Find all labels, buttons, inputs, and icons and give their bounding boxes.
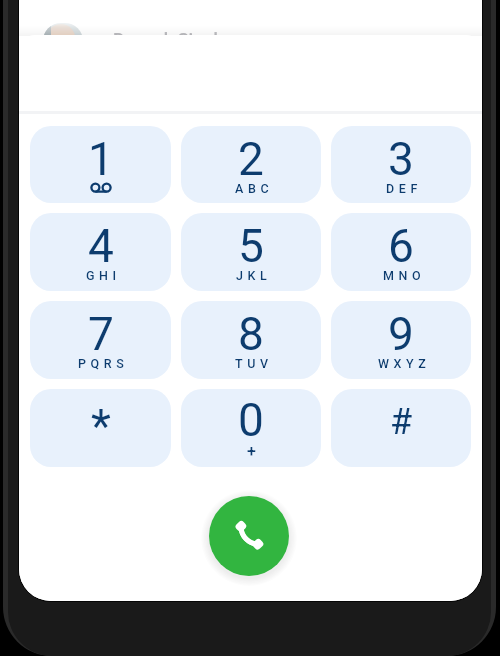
staticText: PQRS	[78, 356, 129, 371]
button[interactable]: 1	[30, 126, 171, 203]
button[interactable]: #	[331, 389, 471, 467]
staticText: 7	[88, 307, 114, 361]
button[interactable]: 9	[331, 301, 471, 379]
staticText: ABC	[235, 181, 274, 196]
button[interactable]: 2	[181, 126, 321, 203]
button[interactable]: 6	[331, 213, 471, 291]
button[interactable]: Call	[209, 496, 289, 576]
button[interactable]: 4	[30, 213, 171, 291]
staticText: GHI	[86, 268, 121, 283]
staticText: *	[91, 399, 111, 453]
staticText: Deepak Singh	[113, 29, 224, 50]
staticText: #	[390, 401, 413, 443]
staticText: JKL	[236, 268, 272, 283]
button[interactable]: 3	[331, 126, 471, 203]
staticText: TUV	[235, 356, 273, 371]
staticText: 3	[388, 132, 414, 186]
staticText: 6	[388, 219, 414, 273]
staticText: 9	[388, 307, 414, 361]
button[interactable]: 7	[30, 301, 171, 379]
button[interactable]: 0	[181, 389, 321, 467]
staticText: MNO	[383, 268, 426, 283]
staticText: WXYZ	[378, 356, 431, 371]
staticText: 1	[88, 132, 114, 186]
staticText: 4	[88, 219, 114, 273]
staticText: 5	[238, 219, 264, 273]
staticText: 8	[238, 307, 264, 361]
button[interactable]: 8	[181, 301, 321, 379]
button[interactable]: *	[30, 389, 171, 467]
staticText: DEF	[386, 181, 422, 196]
button[interactable]: 5	[181, 213, 321, 291]
staticText: +	[247, 442, 256, 461]
staticText: 2	[238, 132, 264, 186]
staticText: 0	[238, 393, 264, 447]
